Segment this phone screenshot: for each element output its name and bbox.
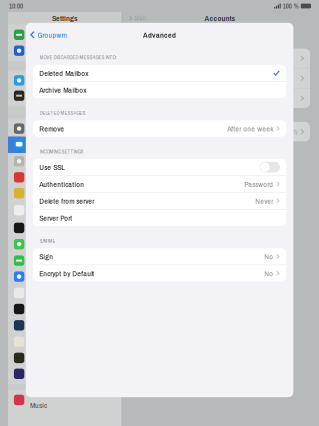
staticText: Mail: [135, 13, 146, 22]
staticText: Never: [255, 195, 273, 206]
button[interactable]: Remove: [33, 120, 286, 137]
staticText: Archive Mailbox: [39, 84, 86, 95]
staticText: S/MIME: [39, 237, 55, 244]
button[interactable]: Use SSL: [33, 159, 286, 175]
button[interactable]: Encrypt by Default: [33, 265, 286, 281]
staticText: After one week: [227, 123, 273, 134]
staticText: No: [264, 251, 273, 262]
staticText: MOVE DISCARDED MESSAGES INTO:: [39, 54, 116, 61]
staticText: Music: [30, 400, 47, 410]
staticText: Use SSL: [39, 162, 65, 172]
staticText: Server Port: [39, 212, 72, 223]
staticText: DELETED MESSAGES: [39, 109, 85, 116]
button[interactable]: Groupwm: [26, 26, 71, 43]
button[interactable]: Deleted Mailbox: [33, 65, 286, 81]
staticText: Sign: [39, 251, 53, 262]
staticText: 10:00: [9, 1, 23, 10]
staticText: 100 %: [283, 1, 299, 10]
staticText: Delete from server: [39, 195, 94, 206]
button[interactable]: Authentication: [33, 176, 286, 192]
staticText: Weekly: [280, 127, 298, 136]
button[interactable]: Use SSL: [260, 162, 280, 172]
staticText: Groupwm: [37, 29, 66, 40]
staticText: Authentication: [39, 179, 84, 189]
staticText: Advanced: [143, 29, 176, 40]
staticText: Accounts: [204, 13, 235, 23]
staticText: Deleted Mailbox: [39, 68, 88, 78]
staticText: INCOMING SETTINGS: [39, 148, 83, 155]
button[interactable]: Server Port: [33, 210, 286, 226]
button[interactable]: Delete from server: [33, 193, 286, 209]
staticText: Settings: [52, 13, 78, 23]
button[interactable]: Archive Mailbox: [33, 82, 286, 98]
staticText: Encrypt by Default: [39, 268, 94, 279]
staticText: Remove: [39, 123, 64, 134]
staticText: No: [264, 268, 273, 279]
button[interactable]: Sign: [33, 248, 286, 265]
staticText: Password: [244, 179, 273, 189]
